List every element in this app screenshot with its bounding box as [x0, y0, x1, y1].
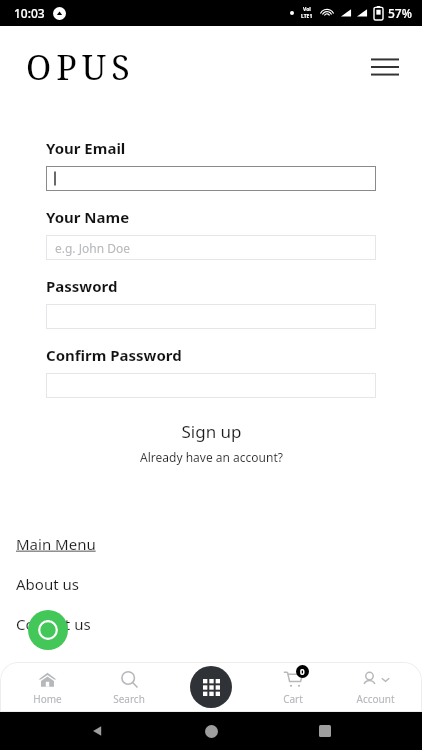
staticText: Account — [356, 692, 395, 706]
button[interactable]: WhatsApp — [28, 610, 68, 650]
staticText: Cart — [283, 692, 303, 706]
button[interactable]: Already have an account? — [0, 449, 422, 465]
button[interactable]: Main Menu — [16, 533, 96, 555]
button[interactable]: Recents — [308, 714, 342, 748]
button[interactable]: OPUS — [26, 44, 135, 90]
button[interactable]: About us — [16, 573, 79, 595]
staticText: 57% — [388, 5, 412, 21]
button[interactable]: Sign up — [0, 420, 422, 443]
button[interactable]: Categories — [190, 666, 232, 708]
staticText: About us — [16, 574, 79, 594]
staticText: Your Email — [46, 138, 126, 158]
staticText: Vol — [303, 6, 311, 13]
staticText: Search — [113, 692, 145, 706]
staticText: Confirm Password — [46, 345, 182, 365]
button[interactable]: Back — [80, 714, 114, 748]
staticText: Password — [46, 276, 118, 296]
staticText: Already have an account? — [140, 449, 283, 465]
staticText: 10:03 — [14, 5, 45, 21]
button[interactable] — [46, 166, 376, 191]
button[interactable]: Home — [194, 714, 228, 748]
button[interactable] — [46, 304, 376, 329]
staticText: Home — [33, 692, 62, 706]
button[interactable] — [46, 373, 376, 398]
button[interactable]: 0 — [258, 662, 328, 712]
button[interactable]: Menu — [364, 46, 406, 88]
button[interactable]: Search — [94, 662, 164, 712]
staticText: LTE1 — [301, 13, 313, 20]
button[interactable]: Account — [340, 662, 410, 712]
button[interactable]: e.g. John Doe — [46, 235, 376, 260]
staticText: Main Menu — [16, 534, 96, 554]
staticText: Your Name — [46, 207, 130, 227]
staticText: e.g. John Doe — [55, 240, 130, 256]
staticText: Sign up — [181, 420, 242, 443]
button[interactable]: Contact us — [16, 613, 91, 635]
staticText: Contact us — [16, 614, 91, 634]
button[interactable]: Home — [12, 662, 82, 712]
staticText: 0 — [300, 666, 305, 677]
